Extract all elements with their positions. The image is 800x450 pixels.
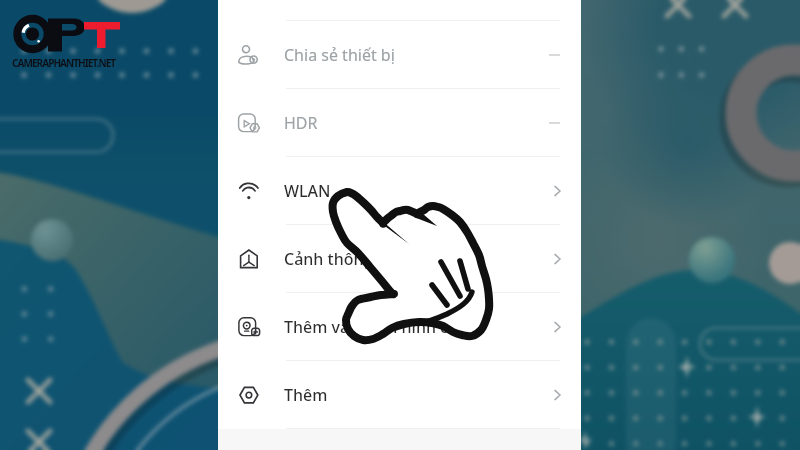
staticText: Thêm vào màn hình chính bbox=[284, 316, 483, 338]
staticText: Thêm bbox=[284, 384, 328, 406]
button[interactable]: Cảnh thông báo bbox=[218, 225, 581, 293]
button[interactable]: Thêm bbox=[218, 361, 581, 429]
staticText: CAMERAPHANTHIET.NET bbox=[12, 56, 116, 70]
staticText: Chia sẻ thiết bị bbox=[284, 44, 395, 66]
button[interactable]: Chia sẻ thiết bị bbox=[218, 21, 581, 89]
button[interactable]: Thêm vào màn hình chính bbox=[218, 293, 581, 361]
staticText: Cảnh thông báo bbox=[284, 248, 407, 270]
button[interactable]: WLAN bbox=[218, 157, 581, 225]
staticText: WLAN bbox=[284, 180, 331, 202]
button[interactable]: HDR bbox=[218, 89, 581, 157]
staticText: HDR bbox=[284, 112, 318, 134]
